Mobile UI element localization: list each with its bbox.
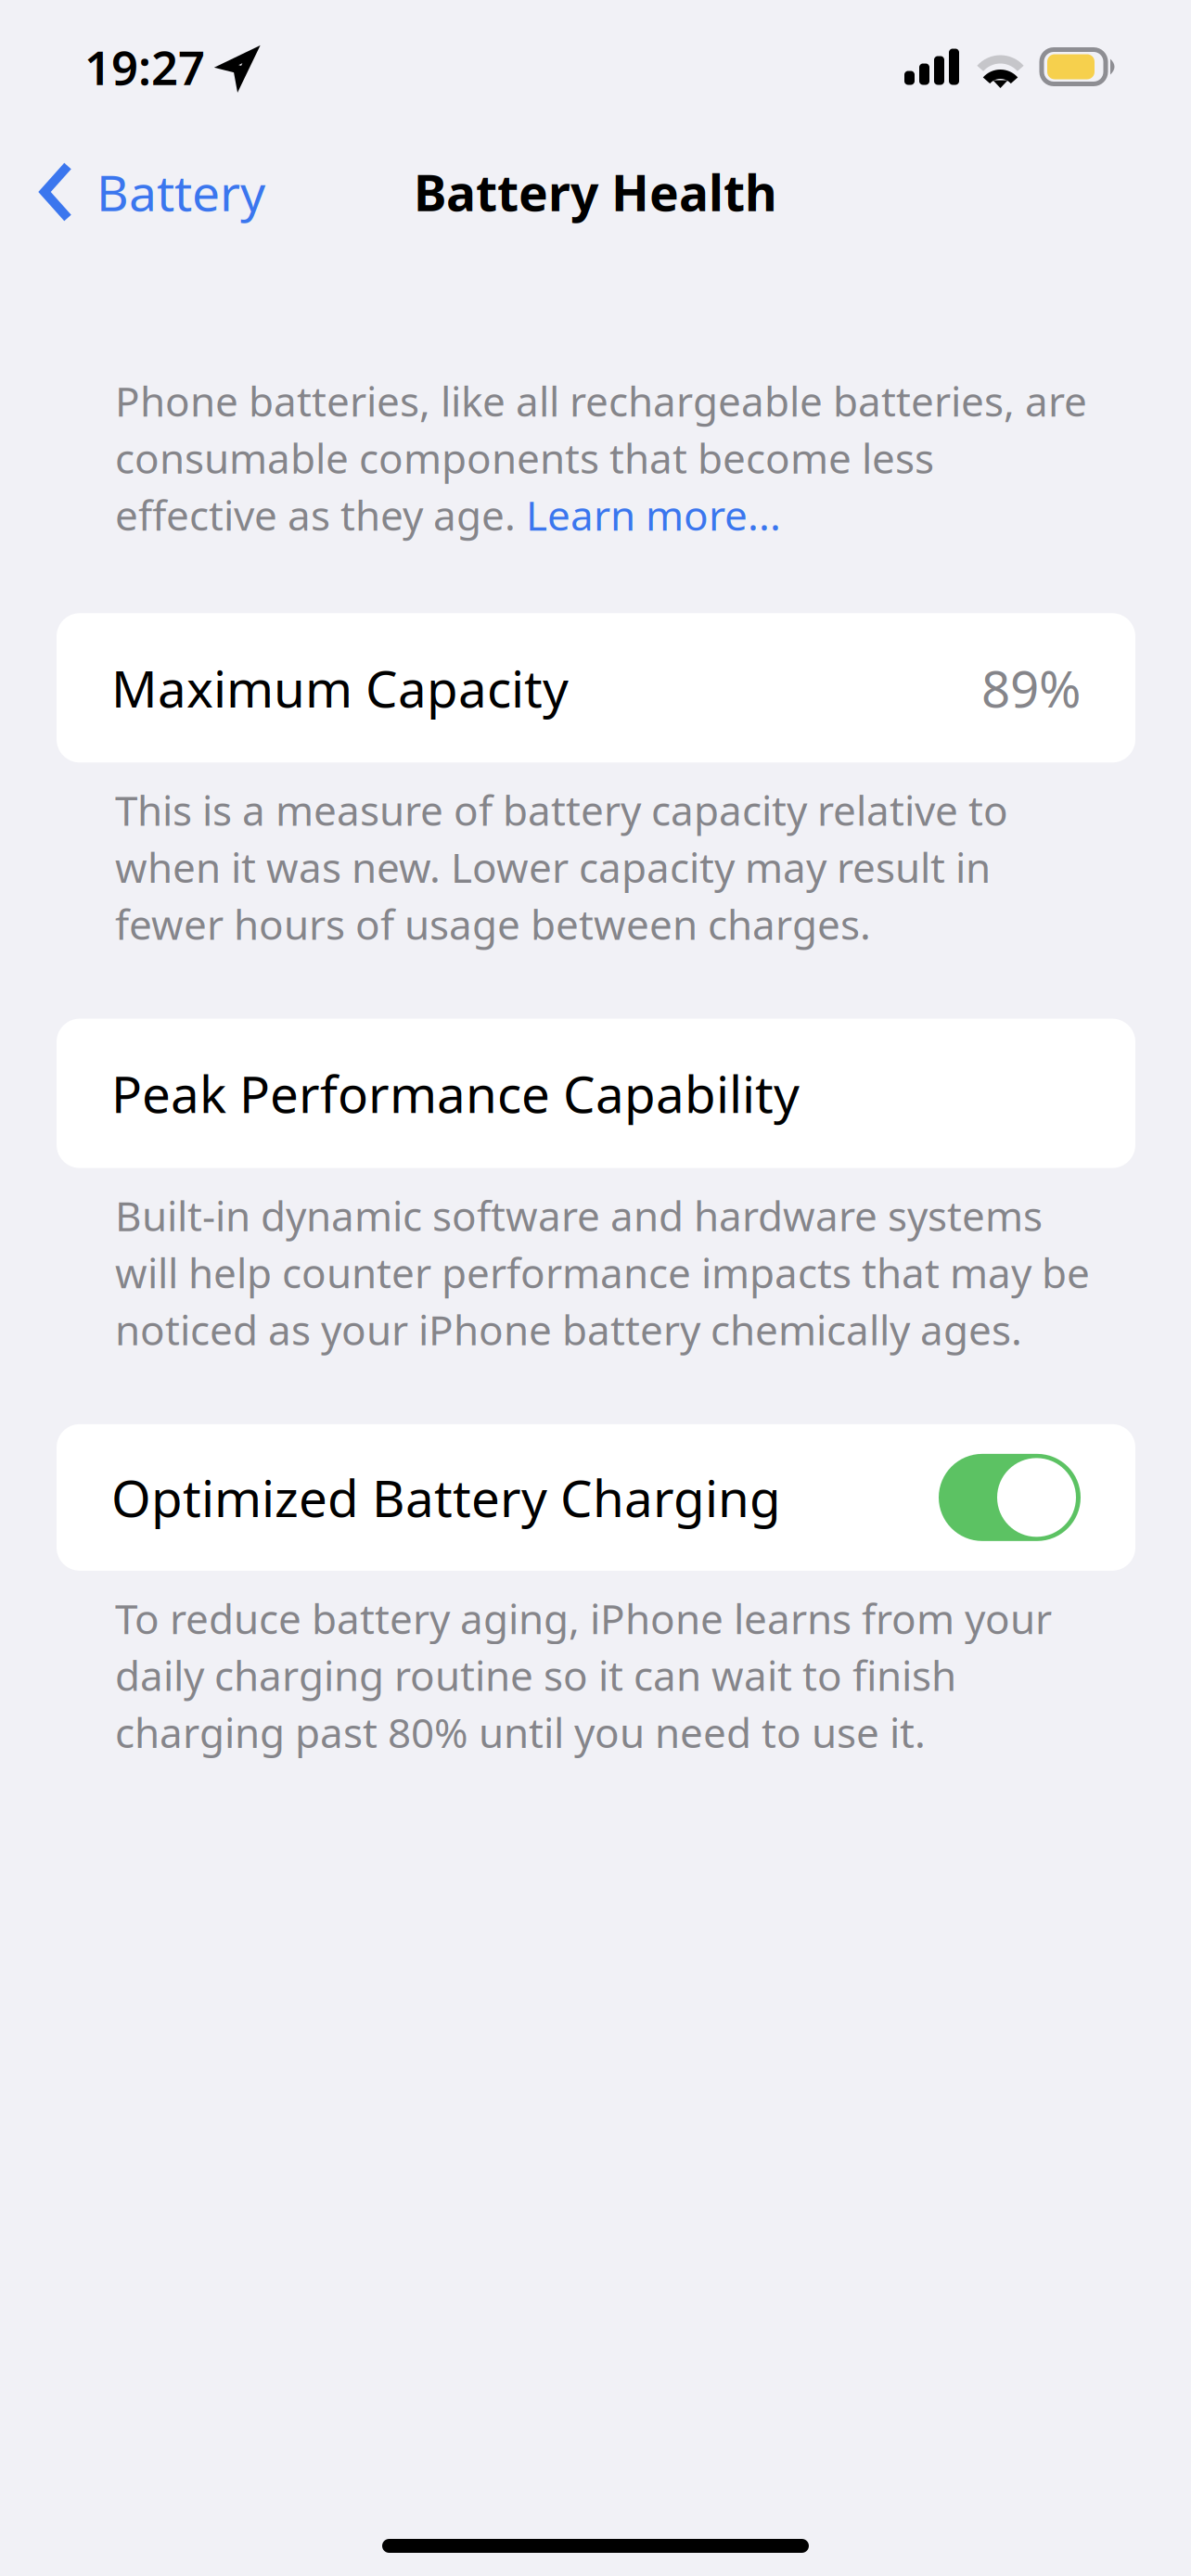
staticText: Phone batteries, like all rechargeable b…	[115, 374, 1087, 542]
staticText: Battery	[96, 159, 265, 225]
staticText: Optimized Battery Charging	[111, 1464, 781, 1531]
staticText: This is a measure of battery capacity re…	[115, 783, 1008, 951]
staticText: To reduce battery aging, iPhone learns f…	[115, 1591, 1052, 1759]
staticText: 19:27	[84, 36, 205, 98]
staticText: 89%	[981, 654, 1081, 722]
staticText: Peak Performance Capability	[111, 1060, 800, 1127]
button[interactable]: Optimized Battery Charging	[939, 1454, 1081, 1541]
button[interactable]: Battery	[0, 146, 288, 238]
staticText: Maximum Capacity	[111, 654, 569, 722]
staticText: Battery Health	[414, 159, 777, 225]
staticText: Built-in dynamic software and hardware s…	[115, 1188, 1090, 1357]
